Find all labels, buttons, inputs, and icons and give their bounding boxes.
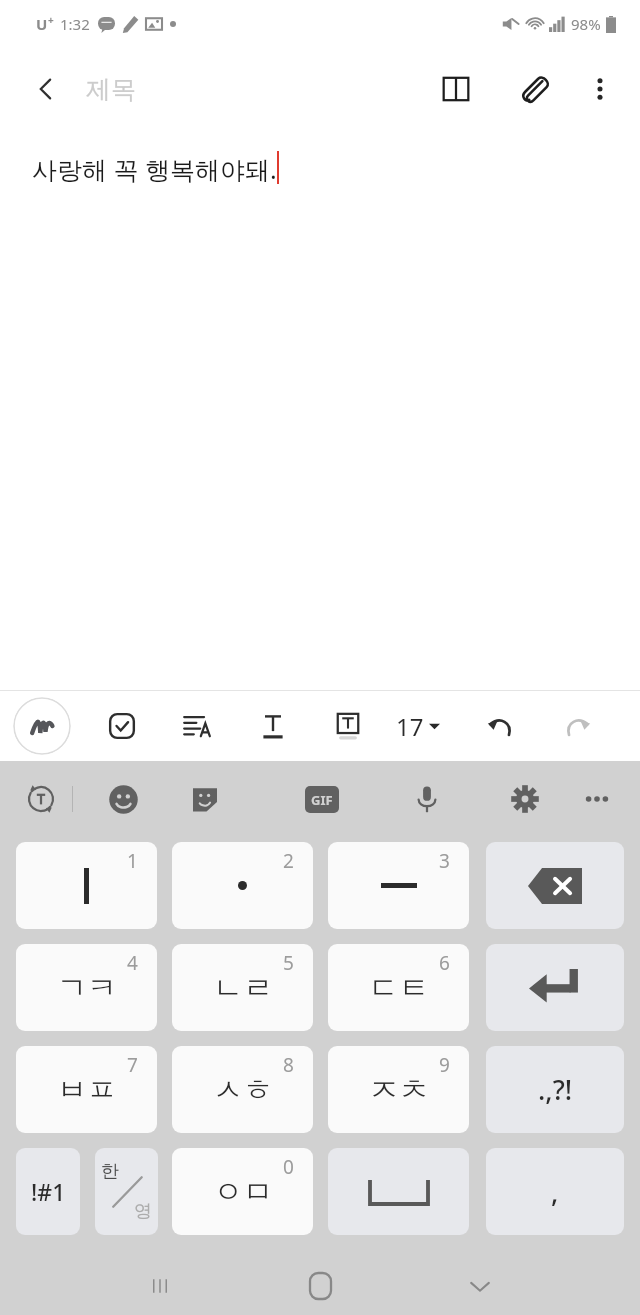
button[interactable]: More (570, 772, 624, 826)
staticText: ㅈㅊ (369, 1071, 429, 1109)
staticText: 영 (134, 1200, 152, 1223)
staticText: 17 (396, 710, 424, 743)
button[interactable]: ㄱㅋ (16, 944, 157, 1031)
button[interactable]: Hide keyboard (452, 1258, 508, 1314)
button[interactable]: Emoji (96, 772, 150, 826)
button[interactable]: View mode (428, 61, 484, 117)
staticText: 1 (127, 848, 138, 874)
button[interactable]: 17 (396, 698, 440, 754)
button[interactable]: Back (22, 65, 70, 113)
button[interactable]: Text box (321, 699, 375, 753)
staticText: 제목 (86, 74, 136, 105)
button[interactable] (328, 842, 469, 929)
button[interactable]: Backspace (486, 842, 624, 929)
staticText: 9 (439, 1052, 450, 1078)
button[interactable]: Redo (551, 699, 605, 753)
button[interactable]: Translate (14, 772, 68, 826)
button[interactable]: .,?! (486, 1046, 624, 1133)
staticText: 98% (571, 14, 601, 34)
button[interactable]: Undo (473, 699, 527, 753)
staticText: 사랑해 꼭 행복해야돼. (32, 152, 277, 186)
staticText: ㄴㄹ (213, 969, 273, 1007)
button[interactable]: Text align (170, 699, 224, 753)
button[interactable]: Enter (486, 944, 624, 1031)
staticText: 8 (283, 1052, 294, 1078)
staticText: ㅇㅁ (213, 1173, 273, 1211)
button[interactable]: ㅈㅊ (328, 1046, 469, 1133)
staticText: 2 (283, 848, 294, 874)
button[interactable]: More options (574, 63, 626, 115)
staticText: 7 (127, 1052, 138, 1078)
staticText: ㄷㅌ (369, 969, 429, 1007)
staticText: 5 (283, 950, 294, 976)
staticText: !#1 (31, 1176, 66, 1207)
staticText: 한 (101, 1160, 119, 1183)
button[interactable]: Stickers (178, 772, 232, 826)
button[interactable]: !#1 (16, 1148, 80, 1235)
button[interactable]: Text style (246, 699, 300, 753)
button[interactable]: Handwriting (13, 697, 71, 755)
button[interactable]: Attach (506, 61, 562, 117)
staticText: U (36, 14, 48, 34)
button[interactable]: ㅂㅍ (16, 1046, 157, 1133)
button[interactable]: GIF (296, 773, 348, 825)
button[interactable]: Space (328, 1148, 469, 1235)
staticText: + (48, 13, 54, 27)
button[interactable] (16, 842, 157, 929)
staticText: 6 (439, 950, 450, 976)
button[interactable]: Home (292, 1258, 348, 1314)
button[interactable]: ㅇㅁ (172, 1148, 313, 1235)
button[interactable] (172, 842, 313, 929)
button[interactable]: ㄷㅌ (328, 944, 469, 1031)
staticText: ㅂㅍ (57, 1071, 117, 1109)
staticText: .,?! (538, 1071, 573, 1108)
staticText: , (551, 1173, 559, 1210)
staticText: 0 (283, 1154, 294, 1180)
button[interactable]: Recents (132, 1258, 188, 1314)
button[interactable]: ㅅㅎ (172, 1046, 313, 1133)
staticText: ㄱㅋ (57, 969, 117, 1007)
button[interactable]: ㄴㄹ (172, 944, 313, 1031)
staticText: 4 (127, 950, 138, 976)
staticText: GIF (311, 791, 333, 809)
staticText: 3 (439, 848, 450, 874)
button[interactable]: Keyboard settings (498, 772, 552, 826)
button[interactable]: , (486, 1148, 624, 1235)
button[interactable]: Voice input (400, 772, 454, 826)
button[interactable]: Korean English toggle (95, 1148, 158, 1235)
staticText: 1:32 (60, 14, 90, 34)
button[interactable]: Checklist (95, 699, 149, 753)
staticText: ㅅㅎ (213, 1071, 273, 1109)
